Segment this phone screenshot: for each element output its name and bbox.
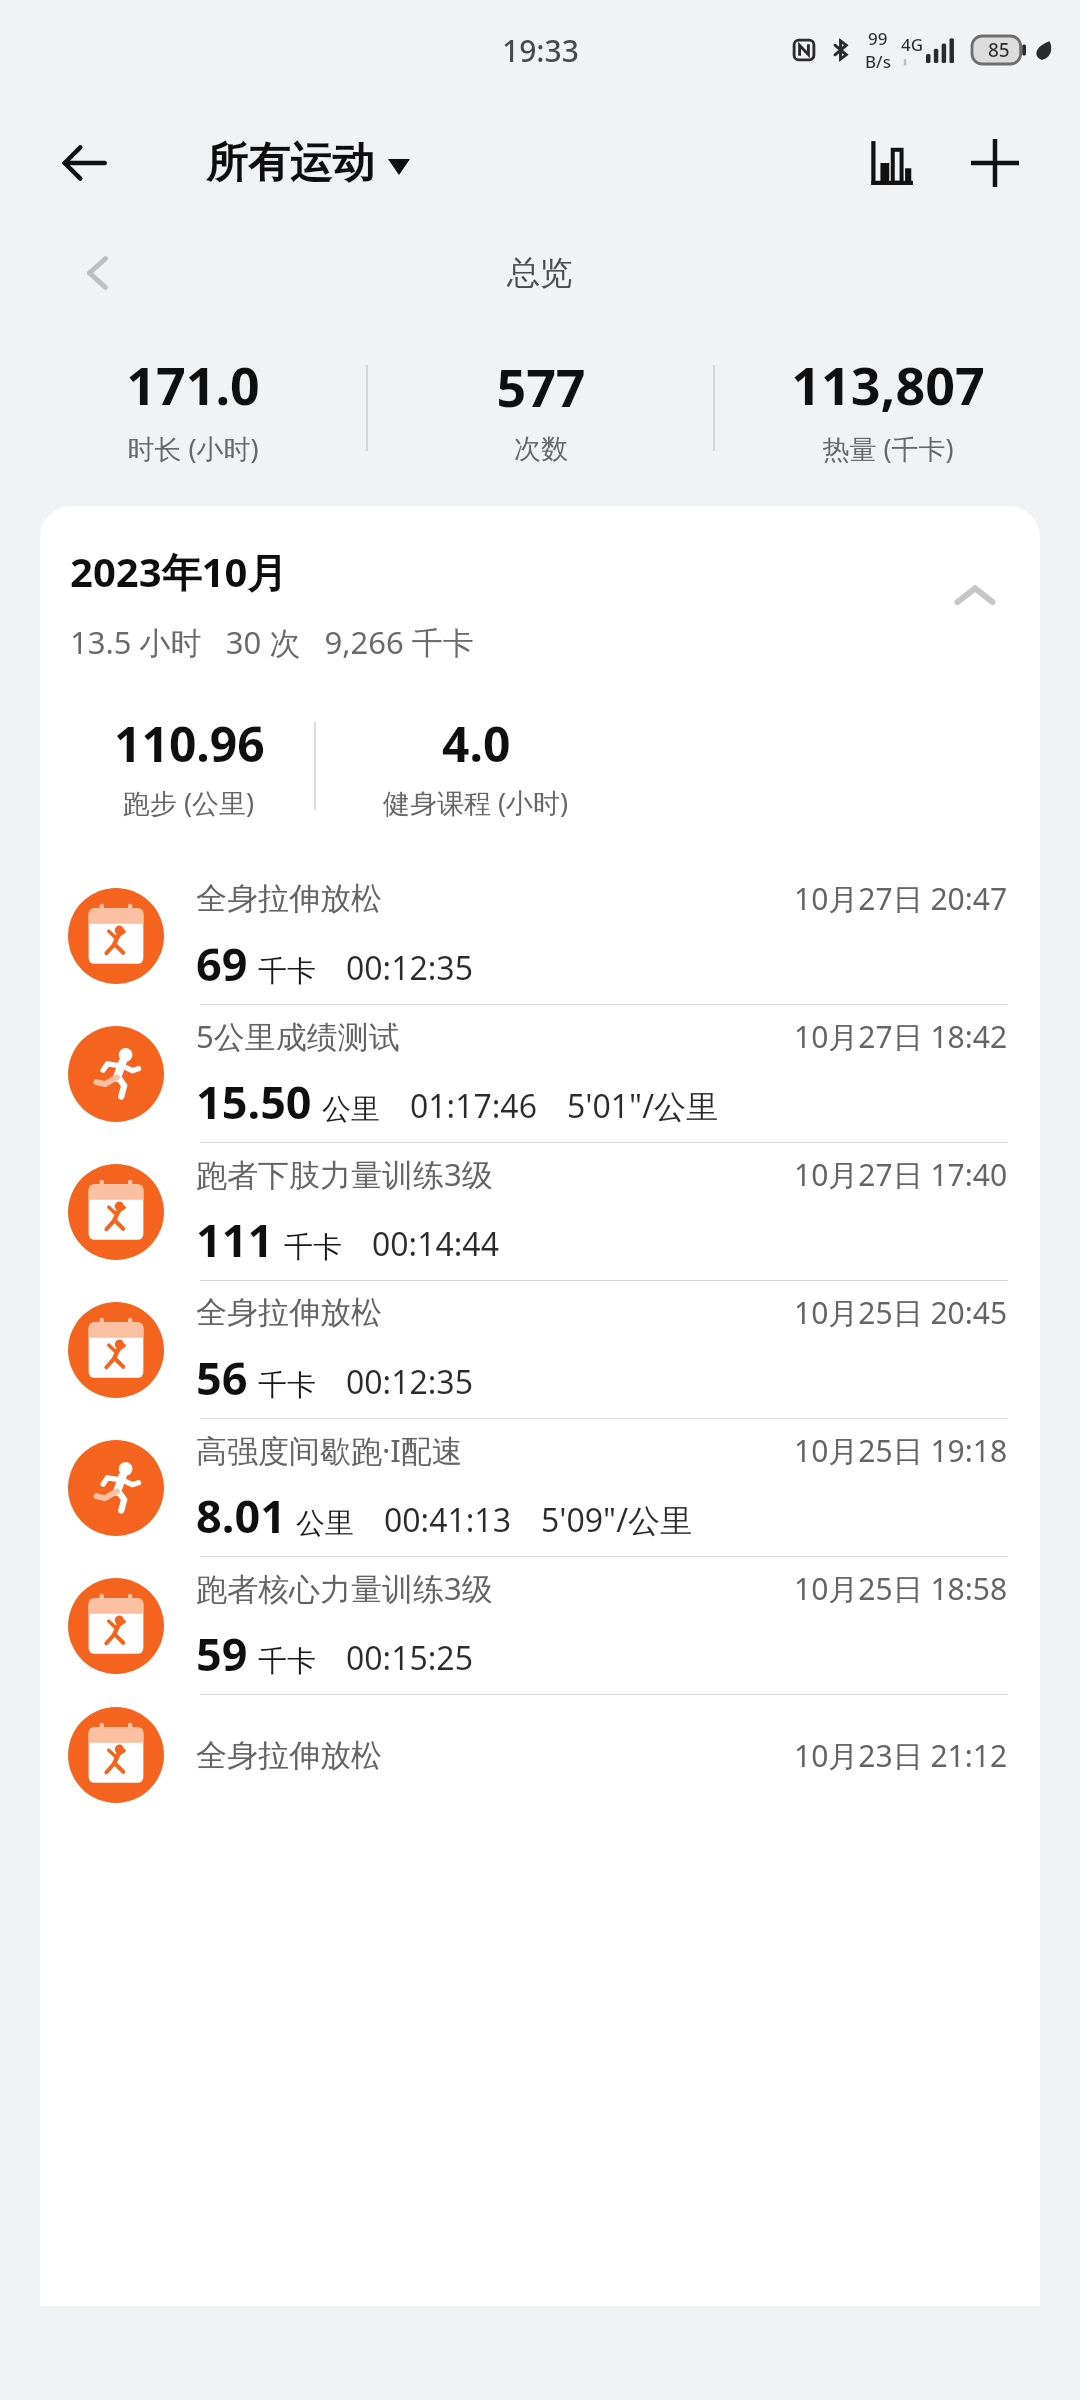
staticText: 10月25日 19:18 <box>794 1430 1008 1471</box>
staticText: 113,807 <box>791 349 985 420</box>
staticText: 00:14:44 <box>372 1222 499 1266</box>
staticText: 110.96 <box>114 711 265 776</box>
staticText: 59 <box>196 1623 248 1684</box>
staticText: 5'09"/公里 <box>541 1498 693 1542</box>
staticText: 10月27日 18:42 <box>794 1016 1008 1057</box>
staticText: 健身课程 (小时) <box>383 784 569 821</box>
staticText: 10月25日 20:45 <box>794 1292 1008 1333</box>
button[interactable]: Add <box>958 126 1032 200</box>
staticText: 时长 (小时) <box>127 430 259 467</box>
staticText: 全身拉伸放松 <box>196 879 382 918</box>
button[interactable]: 所有运动 <box>206 137 410 190</box>
staticText: 10月27日 17:40 <box>794 1154 1008 1195</box>
staticText: 5公里成绩测试 <box>196 1015 400 1057</box>
staticText: 111 <box>196 1209 274 1270</box>
staticText: 公里 <box>296 1505 354 1542</box>
staticText: 全身拉伸放松 <box>196 1736 382 1775</box>
staticText: 4G <box>901 33 924 56</box>
staticText: 次数 <box>514 432 568 466</box>
button[interactable]: Statistics <box>854 126 928 200</box>
staticText: 10月27日 20:47 <box>794 878 1008 919</box>
button[interactable]: Collapse <box>944 564 1006 626</box>
staticText: 所有运动 <box>206 137 374 190</box>
button[interactable]: 高强度间歇跑·I配速 <box>40 1419 1040 1556</box>
staticText: 5'01"/公里 <box>567 1084 719 1128</box>
staticText: 69 <box>196 933 248 994</box>
button[interactable]: 全身拉伸放松 <box>40 867 1040 1004</box>
staticText: 13.5 小时 30 次 9,266 千卡 <box>70 621 474 663</box>
button[interactable]: 全身拉伸放松 <box>40 1281 1040 1418</box>
staticText: 00:12:35 <box>346 946 473 990</box>
staticText: 高强度间歇跑·I配速 <box>196 1429 463 1471</box>
staticText: 00:41:13 <box>384 1498 511 1542</box>
staticText: 总览 <box>507 252 573 294</box>
staticText: 00:12:35 <box>346 1360 473 1404</box>
staticText: 15.50 <box>196 1071 312 1132</box>
button[interactable]: Previous <box>70 245 126 301</box>
button[interactable]: Back <box>54 133 114 193</box>
staticText: 跑者核心力量训练3级 <box>196 1567 493 1609</box>
staticText: 10月23日 21:12 <box>794 1735 1008 1776</box>
staticText: 56 <box>196 1347 248 1408</box>
staticText: 千卡 <box>258 1643 316 1680</box>
button[interactable]: 跑者下肢力量训练3级 <box>40 1143 1040 1280</box>
staticText: 19:33 <box>502 30 579 71</box>
staticText: 全身拉伸放松 <box>196 1293 382 1332</box>
staticText: 85 <box>988 37 1010 63</box>
button[interactable]: 跑者核心力量训练3级 <box>40 1557 1040 1694</box>
staticText: 10月25日 18:58 <box>794 1568 1008 1609</box>
staticText: 4.0 <box>442 711 511 776</box>
staticText: 跑者下肢力量训练3级 <box>196 1153 493 1195</box>
staticText: 千卡 <box>258 1367 316 1404</box>
staticText: 00:15:25 <box>346 1636 473 1680</box>
staticText: 千卡 <box>284 1229 342 1266</box>
staticText: 8.01 <box>196 1485 286 1546</box>
staticText: 公里 <box>322 1091 380 1128</box>
staticText: 热量 (千卡) <box>822 430 954 467</box>
staticText: 千卡 <box>258 953 316 990</box>
staticText: B/s <box>865 50 891 73</box>
button[interactable]: 全身拉伸放松 <box>40 1695 1040 1815</box>
staticText: 171.0 <box>126 349 260 420</box>
button[interactable]: 5公里成绩测试 <box>40 1005 1040 1142</box>
staticText: 跑步 (公里) <box>123 784 255 821</box>
staticText: 99 <box>868 27 888 50</box>
staticText: 577 <box>496 351 586 422</box>
staticText: 2023年10月 <box>70 544 288 599</box>
staticText: 01:17:46 <box>410 1084 537 1128</box>
